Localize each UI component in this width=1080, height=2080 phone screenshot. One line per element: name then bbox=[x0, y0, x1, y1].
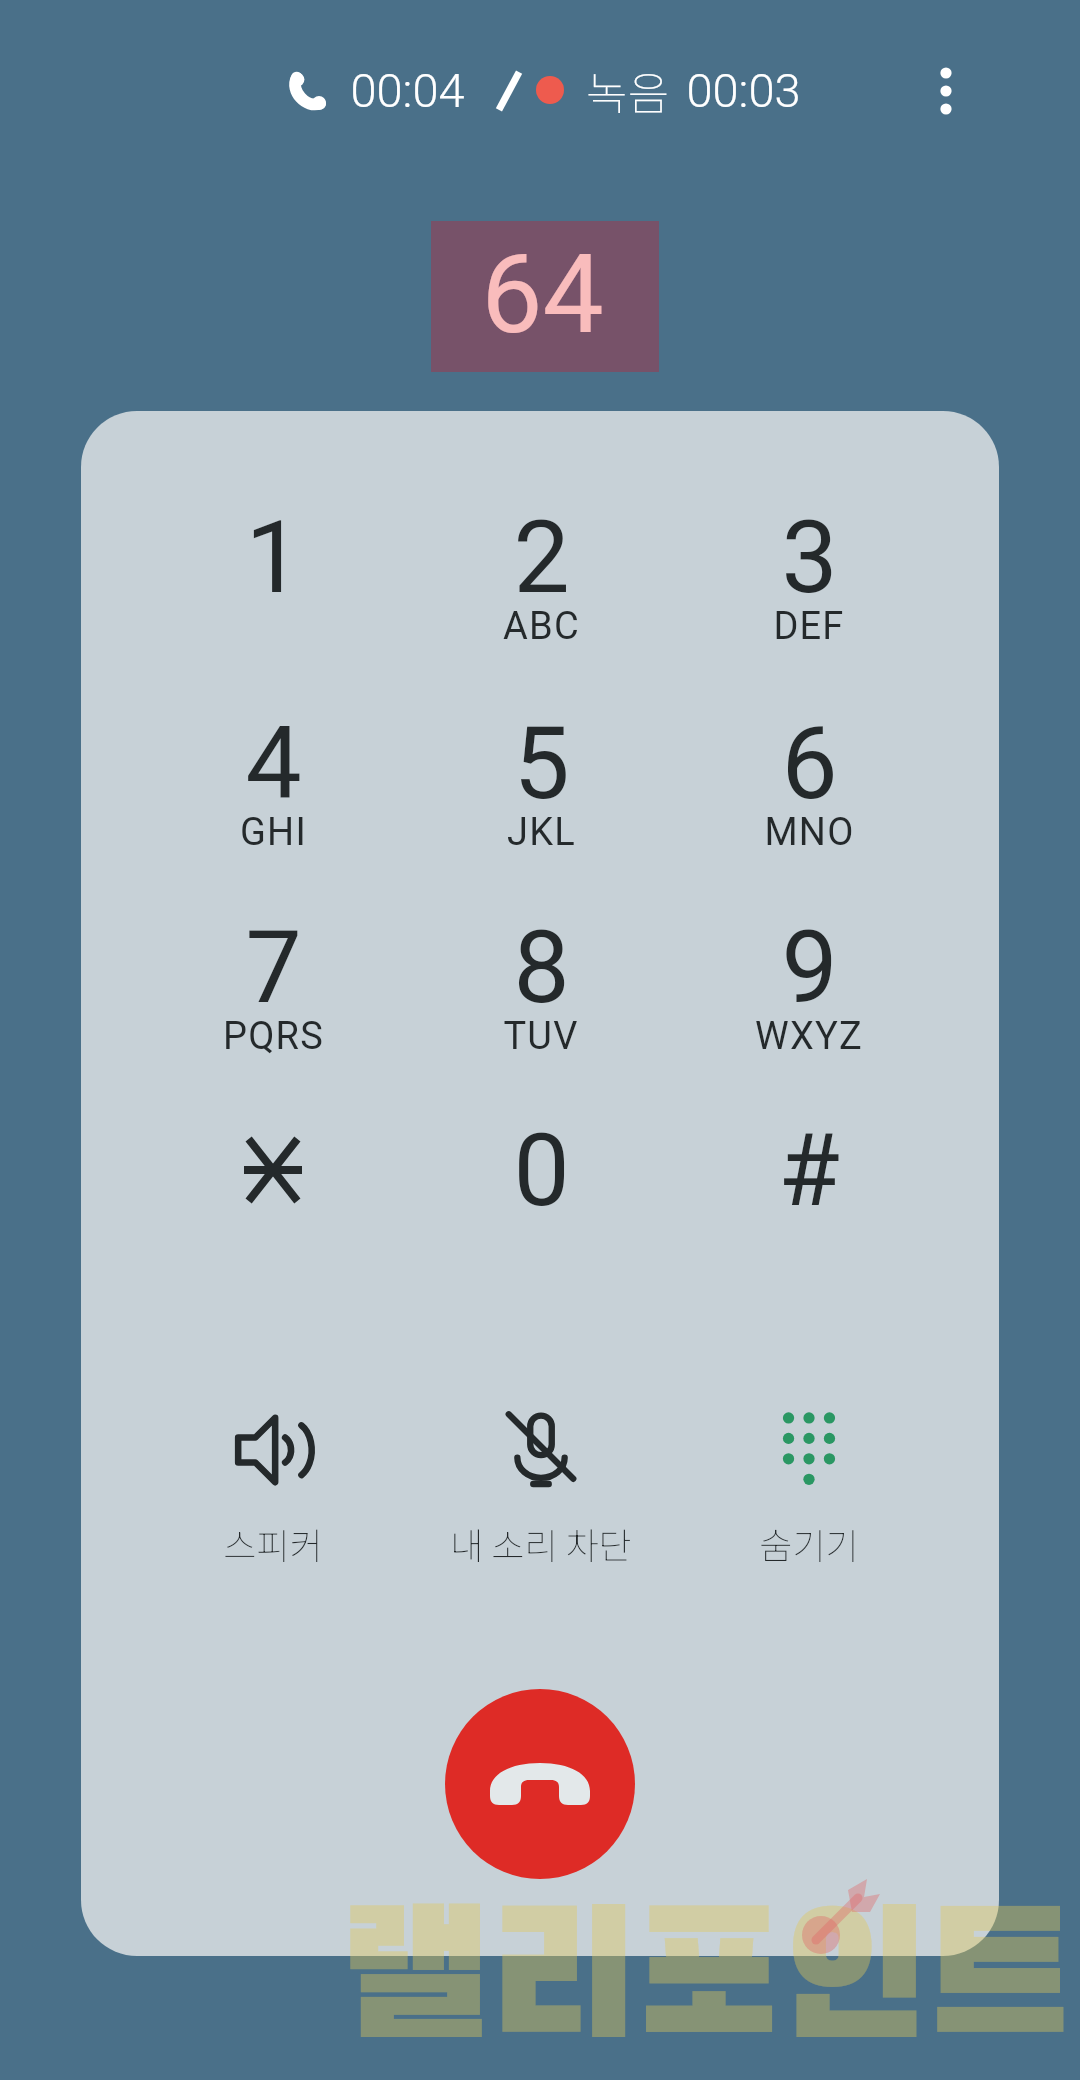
staticText: 랠리포인트 bbox=[340, 1899, 1074, 2074]
staticText: MNO bbox=[764, 810, 855, 855]
button[interactable]: More options bbox=[901, 46, 991, 136]
button[interactable]: 5 bbox=[411, 705, 671, 885]
button[interactable]: # bbox=[679, 1112, 939, 1292]
staticText: 00:04 bbox=[350, 63, 465, 118]
button[interactable]: End call bbox=[445, 1689, 635, 1879]
staticText: DEF bbox=[773, 604, 845, 649]
button[interactable]: 숨기기 bbox=[669, 1396, 949, 1581]
staticText: 1 bbox=[245, 499, 302, 616]
staticText: 6 bbox=[781, 705, 838, 822]
staticText: 64 bbox=[481, 231, 604, 359]
button[interactable]: 3 bbox=[679, 499, 939, 679]
staticText: 4 bbox=[245, 705, 302, 822]
staticText: 5 bbox=[513, 705, 570, 822]
staticText: 숨기기 bbox=[759, 1517, 859, 1569]
staticText: 8 bbox=[513, 909, 570, 1026]
staticText: 3 bbox=[781, 499, 838, 616]
staticText: 0 bbox=[513, 1112, 570, 1229]
button[interactable]: 8 bbox=[411, 909, 671, 1089]
button[interactable]: 6 bbox=[679, 705, 939, 885]
staticText: WXYZ bbox=[755, 1014, 863, 1059]
staticText: 내 소리 차단 bbox=[450, 1517, 632, 1569]
button[interactable]: 스피커 bbox=[133, 1396, 413, 1581]
staticText: 녹음 bbox=[586, 58, 669, 123]
staticText: ABC bbox=[503, 604, 580, 649]
button[interactable]: 내 소리 차단 bbox=[401, 1396, 681, 1581]
staticText: PQRS bbox=[223, 1014, 324, 1059]
button[interactable]: 7 bbox=[143, 909, 403, 1089]
staticText: 00:03 bbox=[686, 63, 801, 118]
staticText: # bbox=[778, 1112, 840, 1229]
button[interactable] bbox=[143, 1112, 403, 1292]
staticText: 2 bbox=[513, 499, 570, 616]
button[interactable]: 4 bbox=[143, 705, 403, 885]
button[interactable]: 2 bbox=[411, 499, 671, 679]
button[interactable]: 녹음 bbox=[534, 44, 814, 136]
staticText: JKL bbox=[507, 810, 576, 855]
button[interactable]: 0 bbox=[411, 1112, 671, 1292]
staticText: 스피커 bbox=[223, 1517, 323, 1569]
staticText: 7 bbox=[245, 909, 302, 1026]
button[interactable]: 9 bbox=[679, 909, 939, 1089]
staticText: 9 bbox=[781, 909, 838, 1026]
staticText: GHI bbox=[240, 810, 307, 855]
button[interactable]: 1 bbox=[143, 499, 403, 679]
staticText: TUV bbox=[503, 1014, 579, 1059]
button[interactable]: 00:04 bbox=[278, 44, 473, 136]
